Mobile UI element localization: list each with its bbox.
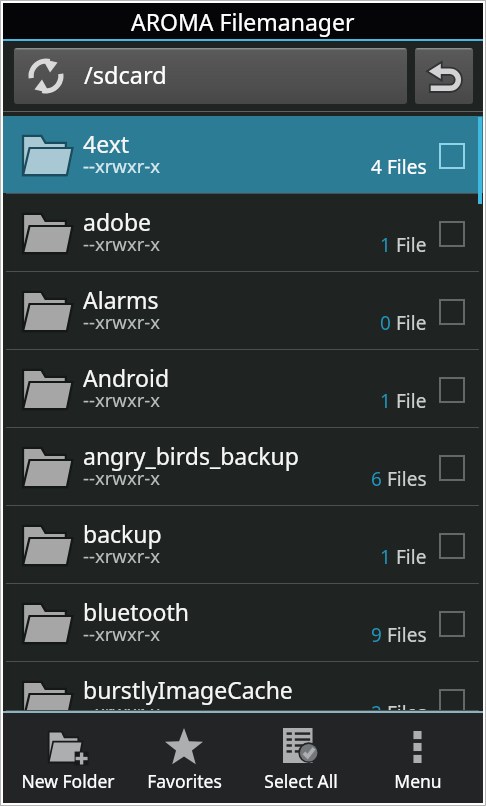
staticText: File	[396, 544, 427, 570]
staticText: Menu	[394, 769, 442, 793]
staticText: File	[396, 310, 427, 336]
staticText: 2	[371, 700, 382, 726]
staticText: --xrwxr-x	[83, 387, 161, 412]
staticText: File	[396, 232, 427, 258]
button[interactable]: Select backup	[440, 534, 464, 558]
button[interactable]: Menu	[359, 713, 476, 803]
staticText: File	[396, 388, 427, 414]
staticText: Files	[387, 466, 427, 492]
button[interactable]: burstlyImageCache	[3, 662, 483, 711]
staticText: angry_birds_backup	[83, 440, 299, 471]
button[interactable]: Select 4ext	[440, 144, 464, 168]
button[interactable]: backup	[3, 506, 483, 583]
button[interactable]: Back	[415, 48, 473, 104]
button[interactable]: Alarms	[3, 272, 483, 349]
staticText: Favorites	[147, 769, 222, 793]
button[interactable]: Select adobe	[440, 222, 464, 246]
button[interactable]: bluetooth	[3, 584, 483, 661]
button[interactable]: 4ext	[3, 116, 483, 193]
staticText: adobe	[83, 206, 152, 237]
button[interactable]: angry_birds_backup	[3, 428, 483, 505]
button[interactable]: /sdcard	[14, 48, 407, 104]
staticText: 4ext	[83, 128, 130, 159]
staticText: --xrwxr-x	[83, 309, 161, 334]
staticText: 9	[371, 622, 382, 648]
button[interactable]: Select angry_birds_backup	[440, 456, 464, 480]
staticText: /sdcard	[84, 59, 167, 91]
staticText: 1	[380, 544, 391, 570]
staticText: AROMA Filemanager	[131, 6, 355, 37]
staticText: 6	[371, 466, 382, 492]
staticText: Alarms	[83, 284, 159, 315]
staticText: Files	[387, 622, 427, 648]
button[interactable]: adobe	[3, 194, 483, 271]
button[interactable]: New Folder	[10, 713, 126, 803]
staticText: --xrwxr-x	[83, 699, 161, 724]
staticText: backup	[83, 518, 162, 549]
staticText: Select All	[264, 769, 338, 793]
staticText: Files	[387, 700, 427, 726]
staticText: bluetooth	[83, 596, 189, 627]
staticText: 4	[371, 154, 382, 180]
button[interactable]: Select Android	[440, 378, 464, 402]
staticText: --xrwxr-x	[83, 621, 161, 646]
button[interactable]: Select bluetooth	[440, 612, 464, 636]
button[interactable]: Android	[3, 350, 483, 427]
staticText: --xrwxr-x	[83, 543, 161, 568]
staticText: Files	[387, 154, 427, 180]
staticText: 1	[380, 232, 391, 258]
staticText: Android	[83, 362, 170, 393]
staticText: New Folder	[21, 769, 115, 793]
button[interactable]: Select burstlyImageCache	[440, 690, 464, 714]
staticText: --xrwxr-x	[83, 231, 161, 256]
staticText: 0	[380, 310, 391, 336]
button[interactable]: Select All	[242, 713, 359, 803]
staticText: --xrwxr-x	[83, 465, 161, 490]
staticText: 1	[380, 388, 391, 414]
staticText: burstlyImageCache	[83, 674, 293, 705]
staticText: --xrwxr-x	[83, 153, 161, 178]
button[interactable]: Select Alarms	[440, 300, 464, 324]
button[interactable]: Favorites	[126, 713, 242, 803]
